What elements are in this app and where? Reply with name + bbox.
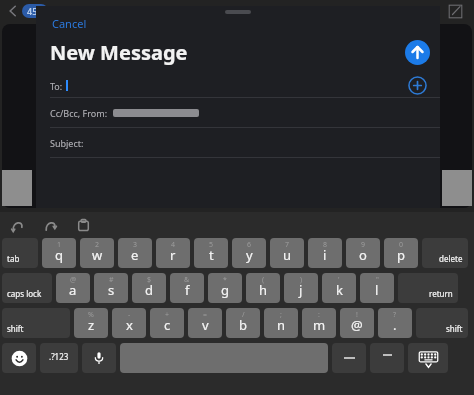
button[interactable]: key bbox=[332, 343, 366, 373]
button[interactable]: h bbox=[246, 273, 280, 303]
button[interactable]: k bbox=[322, 273, 356, 303]
staticText: i bbox=[323, 246, 327, 264]
staticText: + bbox=[165, 310, 170, 320]
button[interactable]: q bbox=[42, 238, 76, 268]
button[interactable]: Compose bbox=[445, 1, 466, 22]
staticText: w bbox=[92, 246, 103, 264]
staticText: p bbox=[397, 246, 405, 264]
staticText: # bbox=[109, 275, 114, 285]
button[interactable]: delete bbox=[422, 238, 468, 268]
staticText: New Message bbox=[50, 39, 188, 66]
button[interactable]: key bbox=[82, 343, 116, 373]
button[interactable]: key bbox=[2, 343, 36, 373]
staticText: return bbox=[429, 288, 453, 299]
staticText: n bbox=[277, 316, 286, 334]
button[interactable]: caps lock bbox=[2, 273, 52, 303]
button[interactable]: Paste bbox=[72, 214, 95, 237]
staticText: * bbox=[223, 275, 227, 285]
staticText: z bbox=[88, 316, 95, 334]
button[interactable]: Back bbox=[4, 2, 22, 20]
button[interactable]: v bbox=[188, 308, 222, 338]
staticText: Cc/Bcc, From: bbox=[50, 107, 108, 119]
staticText: To: bbox=[50, 80, 63, 92]
staticText: r bbox=[170, 246, 176, 264]
button[interactable]: u bbox=[270, 238, 304, 268]
button[interactable]: e bbox=[118, 238, 152, 268]
staticText: - bbox=[128, 310, 131, 320]
staticText: @ bbox=[70, 275, 77, 285]
staticText: k bbox=[336, 281, 343, 299]
staticText: u bbox=[283, 246, 292, 264]
staticText: ! bbox=[356, 310, 358, 320]
button[interactable]: .?123 bbox=[40, 343, 78, 373]
staticText: ; bbox=[280, 310, 282, 320]
staticText: t bbox=[209, 246, 214, 264]
staticText: .?123 bbox=[49, 351, 69, 362]
staticText: 2 bbox=[95, 240, 100, 250]
button[interactable]: y bbox=[232, 238, 266, 268]
button[interactable]: s bbox=[94, 273, 128, 303]
button[interactable]: @ bbox=[340, 308, 374, 338]
staticText: c bbox=[164, 316, 171, 334]
button[interactable]: shift bbox=[2, 308, 70, 338]
button[interactable]: d bbox=[132, 273, 166, 303]
button[interactable]: Cancel bbox=[50, 14, 89, 33]
staticText: 9 bbox=[361, 240, 366, 250]
button[interactable]: . bbox=[378, 308, 412, 338]
staticText: j bbox=[299, 281, 303, 299]
button[interactable]: m bbox=[302, 308, 336, 338]
button[interactable]: key bbox=[408, 343, 448, 373]
staticText: x bbox=[126, 316, 133, 334]
button[interactable]: key bbox=[370, 343, 404, 373]
button[interactable]: To: bbox=[36, 74, 440, 97]
staticText: h bbox=[259, 281, 268, 299]
staticText: 0 bbox=[399, 240, 404, 250]
button[interactable]: i bbox=[308, 238, 342, 268]
button[interactable]: l bbox=[360, 273, 394, 303]
staticText: : bbox=[318, 310, 320, 320]
button[interactable]: Undo bbox=[6, 213, 30, 237]
staticText: d bbox=[145, 281, 153, 299]
staticText: % bbox=[88, 310, 94, 320]
button[interactable]: Send bbox=[405, 40, 430, 65]
button[interactable]: Cc/Bcc, From: bbox=[36, 98, 440, 127]
staticText: g bbox=[221, 281, 229, 299]
button[interactable]: w bbox=[80, 238, 114, 268]
staticText: ' bbox=[338, 275, 340, 285]
button[interactable]: Redo bbox=[39, 213, 63, 237]
button[interactable]: x bbox=[112, 308, 146, 338]
button[interactable]: r bbox=[156, 238, 190, 268]
staticText: ) bbox=[300, 275, 303, 285]
button[interactable]: b bbox=[226, 308, 260, 338]
button[interactable]: Subject: bbox=[36, 128, 440, 157]
button[interactable]: p bbox=[384, 238, 418, 268]
button[interactable]: z bbox=[74, 308, 108, 338]
staticText: $ bbox=[147, 275, 152, 285]
button[interactable]: c bbox=[150, 308, 184, 338]
button[interactable]: a bbox=[56, 273, 90, 303]
button[interactable]: f bbox=[170, 273, 204, 303]
button[interactable]: 459 bbox=[27, 5, 43, 17]
staticText: 3 bbox=[133, 240, 138, 250]
staticText: 6 bbox=[247, 240, 252, 250]
button[interactable]: t bbox=[194, 238, 228, 268]
staticText: o bbox=[359, 246, 367, 264]
button[interactable]: j bbox=[284, 273, 318, 303]
staticText: 4 bbox=[171, 240, 176, 250]
button[interactable]: return bbox=[398, 273, 458, 303]
staticText: e bbox=[131, 246, 139, 264]
button[interactable]: tab bbox=[2, 238, 38, 268]
staticText: Cancel bbox=[52, 16, 87, 31]
button[interactable]: n bbox=[264, 308, 298, 338]
staticText: 1 bbox=[57, 240, 62, 250]
staticText: s bbox=[108, 281, 115, 299]
button[interactable]: g bbox=[208, 273, 242, 303]
staticText: l bbox=[375, 281, 379, 299]
staticText: shift bbox=[7, 323, 24, 334]
button[interactable]: shift bbox=[416, 308, 468, 338]
staticText: a bbox=[69, 281, 77, 299]
button[interactable]: o bbox=[346, 238, 380, 268]
button[interactable]: Add contact bbox=[408, 76, 427, 95]
staticText: Subject: bbox=[50, 137, 84, 149]
